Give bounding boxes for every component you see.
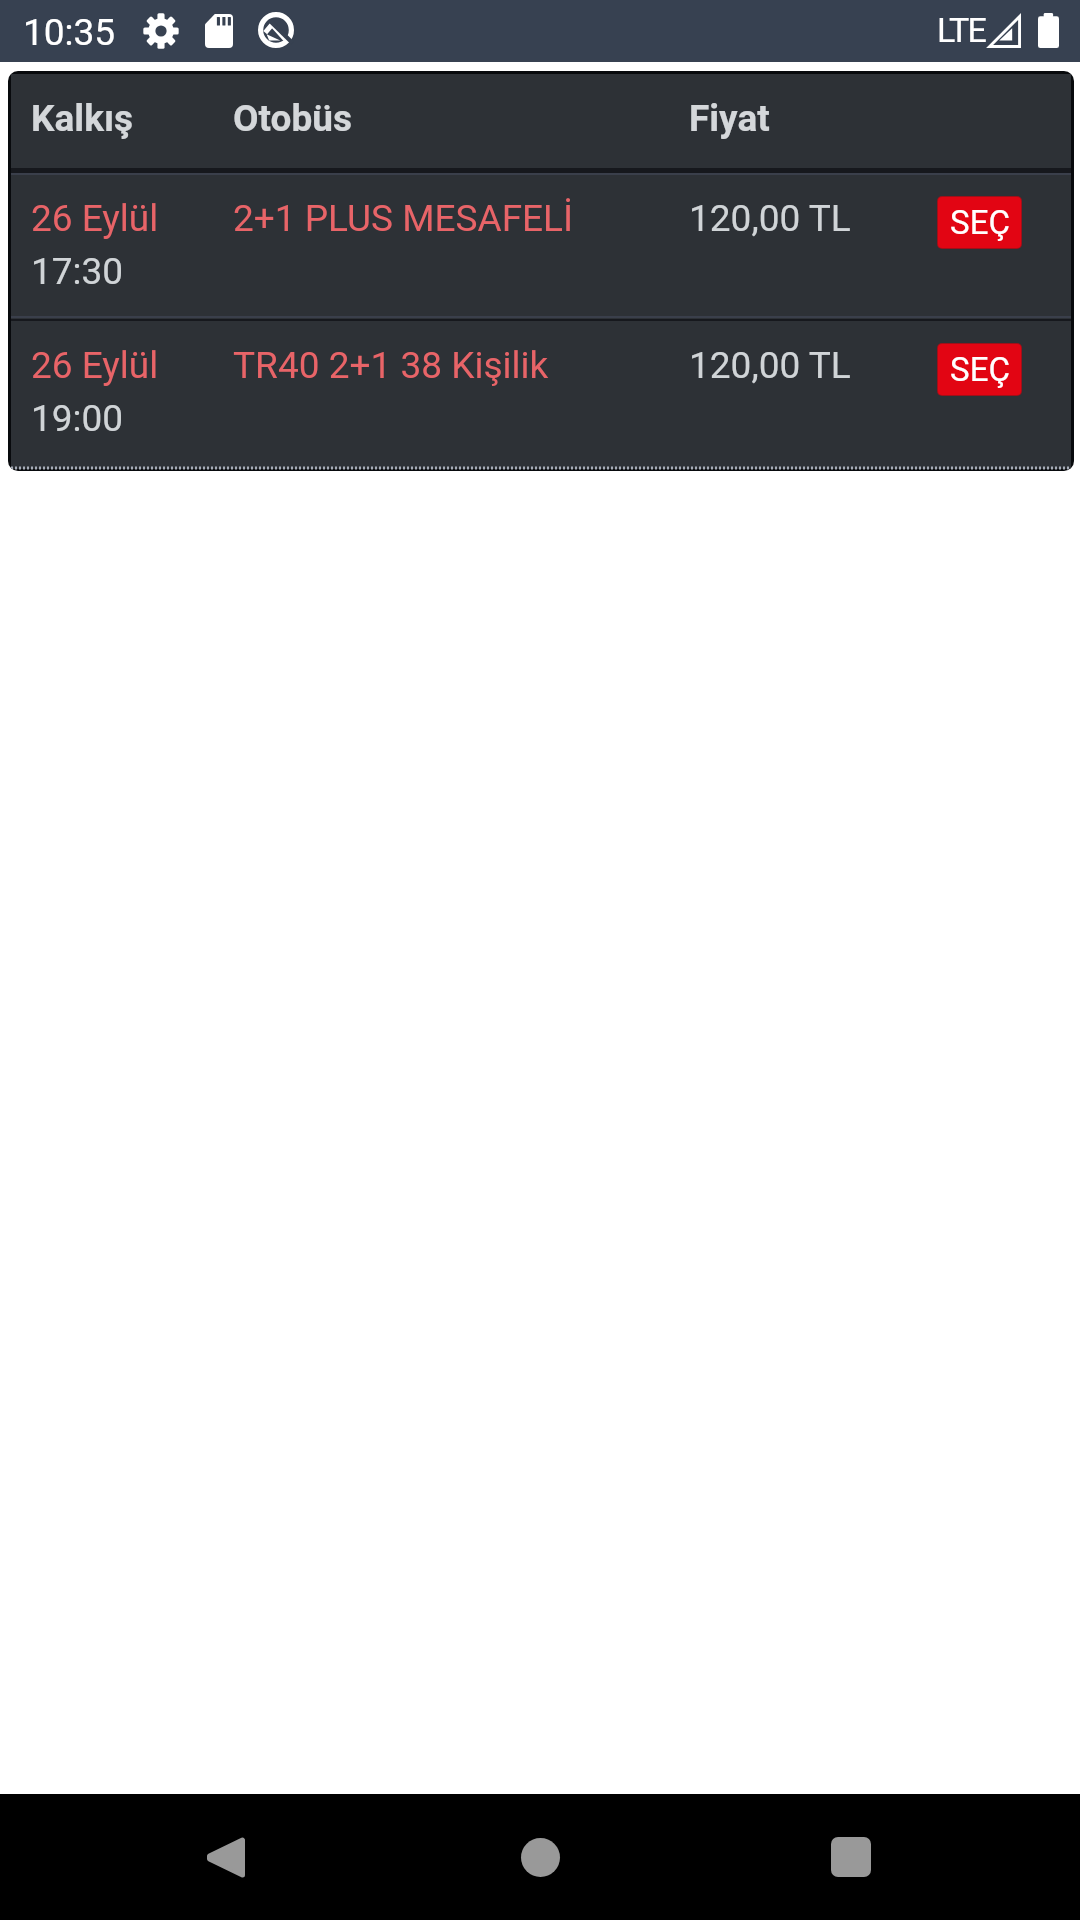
button[interactable]: Home <box>480 1797 600 1917</box>
staticText: 26 Eylül <box>31 197 159 240</box>
staticText: 120,00 TL <box>689 344 851 387</box>
staticText: Fiyat <box>689 97 770 140</box>
staticText: Otobüs <box>233 97 353 140</box>
button[interactable]: SEÇ <box>938 344 1021 395</box>
button[interactable]: SEÇ <box>938 197 1021 248</box>
staticText: TR40 2+1 38 Kişilik <box>233 344 549 387</box>
button[interactable]: 26 Eylül <box>11 175 1071 316</box>
staticText: SEÇ <box>950 203 1010 242</box>
button[interactable]: 26 Eylül <box>11 322 1071 467</box>
button[interactable]: Back <box>166 1797 286 1917</box>
staticText: 10:35 <box>23 11 116 54</box>
staticText: 26 Eylül <box>31 344 159 387</box>
staticText: 120,00 TL <box>689 197 851 240</box>
staticText: SEÇ <box>950 350 1010 389</box>
staticText: 19:00 <box>31 397 124 440</box>
staticText: 2+1 PLUS MESAFELİ <box>233 197 574 240</box>
staticText: LTE <box>937 10 985 50</box>
staticText: 17:30 <box>31 250 124 293</box>
staticText: Kalkış <box>31 97 134 140</box>
button[interactable]: Recent apps <box>791 1797 911 1917</box>
